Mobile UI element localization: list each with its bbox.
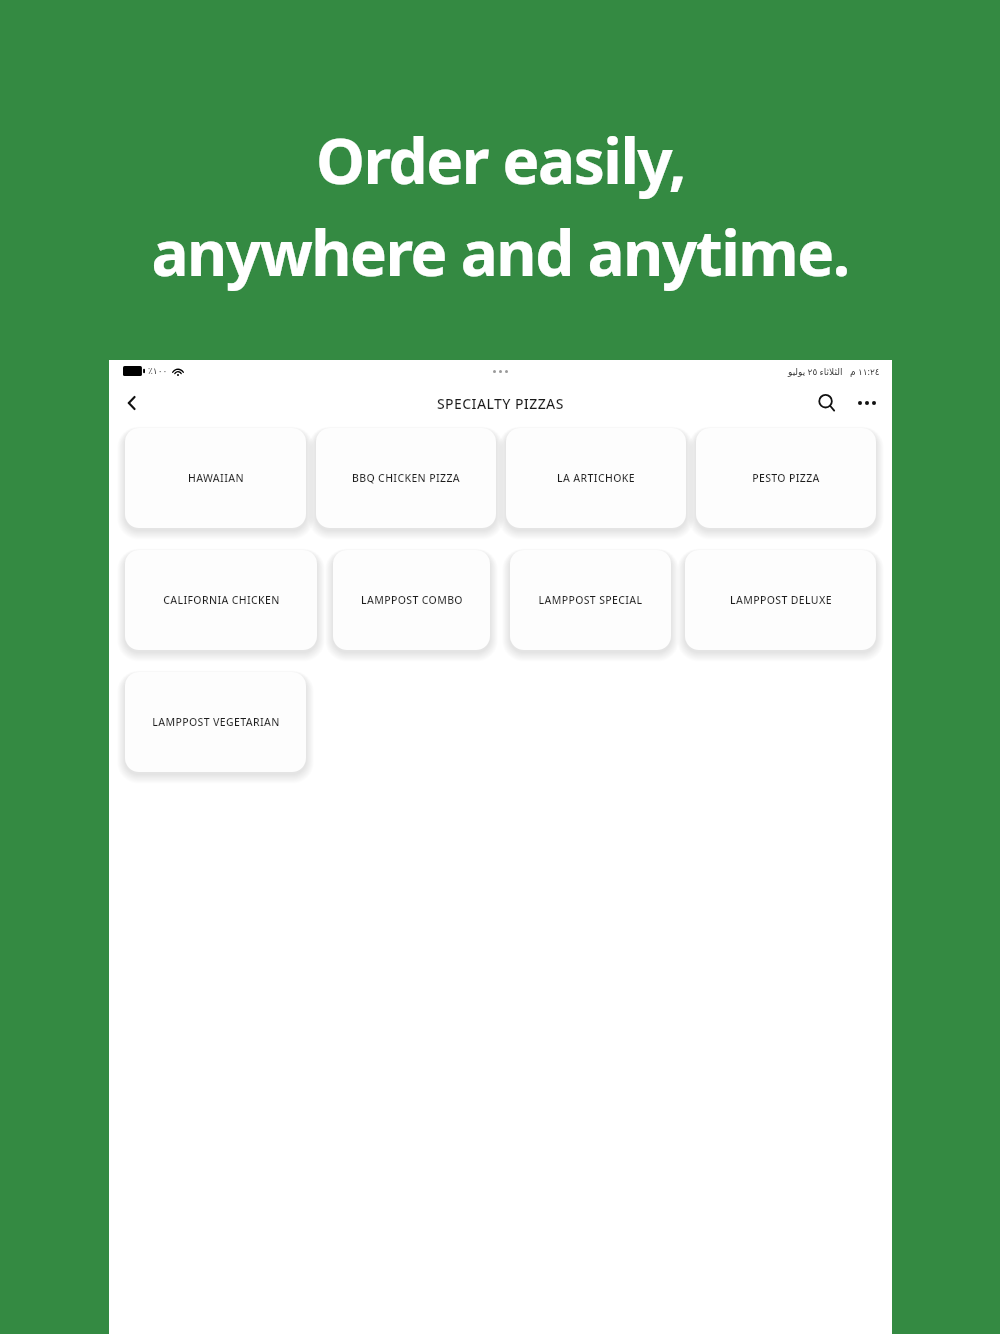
staticText: SPECIALTY PIZZAS (437, 394, 564, 413)
button[interactable]: More options (850, 386, 884, 420)
staticText: ١١:٢٤ م (850, 365, 880, 377)
button[interactable]: CALIFORNIA CHICKEN (125, 550, 317, 650)
staticText: LAMPPOST SPECIAL (538, 593, 643, 607)
button[interactable]: PESTO PIZZA (696, 428, 876, 528)
staticText: Order easily, (316, 118, 685, 202)
button[interactable]: HAWAIIAN (125, 428, 306, 528)
staticText: PESTO PIZZA (752, 471, 820, 485)
button[interactable]: LAMPPOST COMBO (333, 550, 490, 650)
button[interactable]: LAMPPOST DELUXE (685, 550, 876, 650)
staticText: CALIFORNIA CHICKEN (163, 593, 280, 607)
staticText: LAMPPOST COMBO (361, 593, 463, 607)
staticText: anywhere and anytime. (151, 210, 849, 294)
button[interactable]: BBQ CHICKEN PIZZA (316, 428, 496, 528)
staticText: HAWAIIAN (188, 471, 244, 485)
staticText: LA ARTICHOKE (557, 471, 635, 485)
button[interactable]: Back (115, 386, 149, 420)
staticText: LAMPPOST VEGETARIAN (152, 715, 280, 729)
button[interactable]: LAMPPOST VEGETARIAN (125, 672, 306, 772)
button[interactable]: LA ARTICHOKE (506, 428, 686, 528)
staticText: الثلاثاء ٢٥ يوليو (788, 365, 843, 377)
staticText: LAMPPOST DELUXE (730, 593, 832, 607)
button[interactable]: LAMPPOST SPECIAL (510, 550, 671, 650)
button[interactable]: Search (810, 386, 844, 420)
staticText: ٪١٠٠ (148, 366, 168, 376)
staticText: BBQ CHICKEN PIZZA (352, 471, 460, 485)
